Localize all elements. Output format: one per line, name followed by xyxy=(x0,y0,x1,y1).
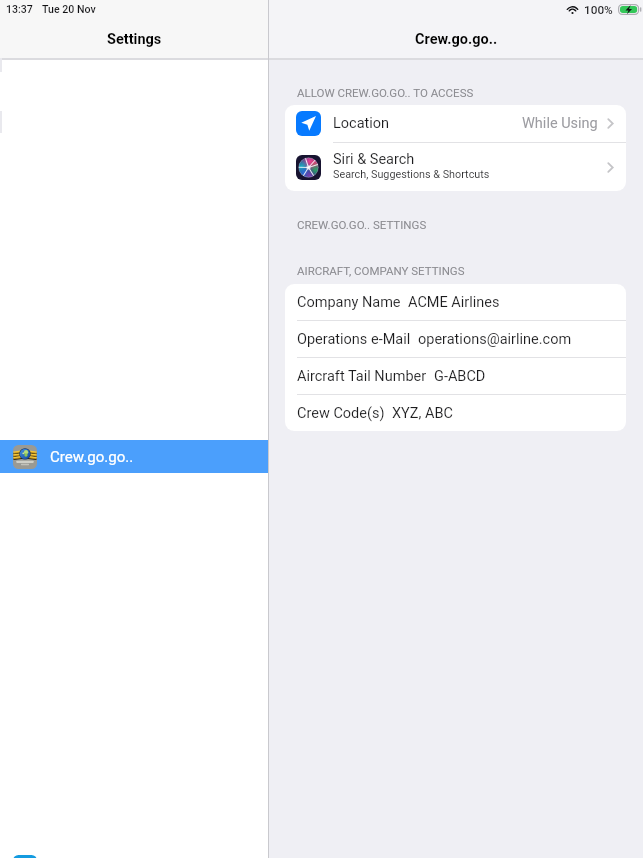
staticText: operations@airline.com xyxy=(418,331,572,348)
staticText: CREW.GO.GO.. SETTINGS xyxy=(297,218,427,231)
other: Battery xyxy=(618,4,642,15)
staticText: G-ABCD xyxy=(434,368,486,385)
staticText: Crew Code(s) xyxy=(297,405,385,422)
staticText: While Using xyxy=(522,115,598,132)
button[interactable]: Operations e-Mail xyxy=(285,321,626,357)
staticText: Operations e-Mail xyxy=(297,331,411,348)
other: Wi-Fi xyxy=(566,5,579,14)
staticText: ACME Airlines xyxy=(408,294,500,311)
button[interactable]: Crew.go.go.. xyxy=(269,21,643,58)
button[interactable]: Crew.go.go.. xyxy=(0,440,268,473)
staticText: Crew.go.go.. xyxy=(415,31,498,48)
staticText: Search, Suggestions & Shortcuts xyxy=(333,168,490,181)
staticText: Tue 20 Nov xyxy=(42,3,96,15)
staticText: Crew.go.go.. xyxy=(50,448,134,466)
staticText: Aircraft Tail Number xyxy=(297,368,427,385)
button[interactable]: Crew Code(s) xyxy=(285,395,626,431)
button[interactable]: Aircraft Tail Number xyxy=(285,358,626,394)
staticText: AIRCRAFT, COMPANY SETTINGS xyxy=(297,264,465,277)
staticText: ALLOW CREW.GO.GO.. TO ACCESS xyxy=(297,86,474,99)
staticText: 13:37 xyxy=(6,3,33,15)
button[interactable]: App Store xyxy=(0,850,268,858)
button[interactable]: Company Name xyxy=(285,284,626,320)
button[interactable]: Location xyxy=(285,105,626,142)
staticText: Settings xyxy=(107,31,162,48)
staticText: Siri & Search xyxy=(333,151,415,168)
staticText: 100% xyxy=(584,3,613,17)
staticText: XYZ, ABC xyxy=(392,405,453,422)
staticText: Company Name xyxy=(297,294,401,311)
staticText: Location xyxy=(333,115,390,132)
button[interactable]: Siri & Search xyxy=(285,143,626,191)
button[interactable]: Settings xyxy=(0,21,268,58)
